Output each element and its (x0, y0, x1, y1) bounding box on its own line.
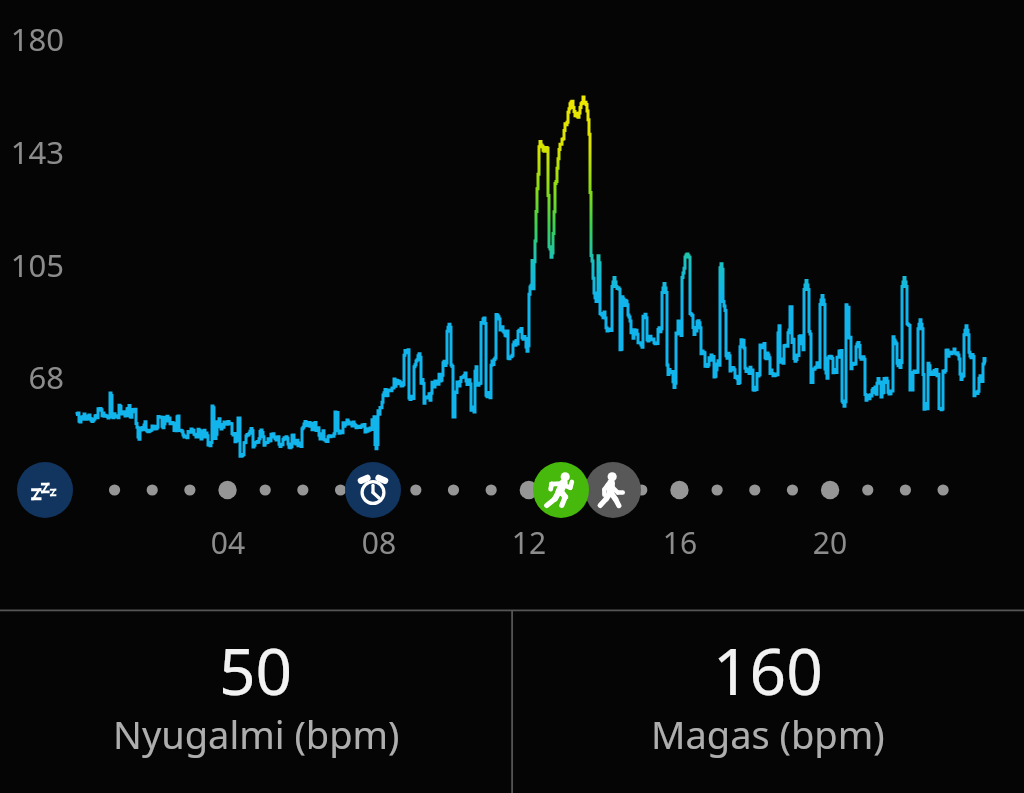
button[interactable]: Walking (585, 462, 641, 518)
staticText: 180 (0, 18, 64, 60)
staticText: Nyugalmi (bpm) (113, 708, 400, 760)
staticText: 20 (790, 522, 870, 563)
staticText: 160 (713, 627, 823, 714)
button[interactable]: Alarm (345, 462, 401, 518)
button[interactable]: Running (533, 462, 589, 518)
button[interactable]: Sleep (17, 462, 73, 518)
button[interactable]: 50 (0, 612, 512, 793)
staticText: 105 (0, 244, 64, 286)
staticText: 143 (0, 131, 64, 173)
staticText: 04 (188, 522, 268, 563)
staticText: 08 (339, 522, 419, 563)
button[interactable]: 160 (512, 612, 1024, 793)
staticText: Magas (bpm) (651, 708, 885, 760)
staticText: 50 (219, 627, 293, 714)
staticText: 68 (0, 356, 64, 398)
staticText: 12 (489, 522, 569, 563)
staticText: 16 (640, 522, 720, 563)
